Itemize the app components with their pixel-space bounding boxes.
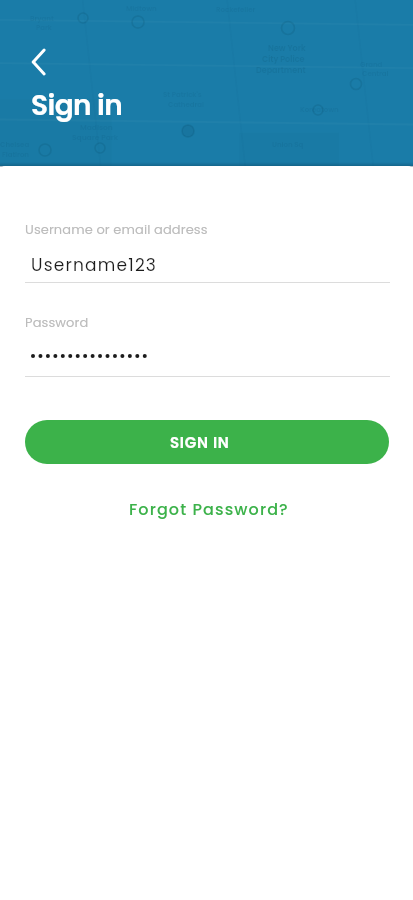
button[interactable]: Back bbox=[22, 44, 58, 80]
button[interactable]: Forgot Password? bbox=[123, 492, 295, 526]
button[interactable]: SIGN IN bbox=[25, 420, 389, 464]
staticText: Username123 bbox=[31, 253, 158, 277]
staticText: SIGN IN bbox=[170, 432, 230, 453]
staticText: Password bbox=[25, 313, 89, 331]
staticText: Username or email address bbox=[25, 220, 208, 238]
staticText: Sign in bbox=[31, 86, 123, 125]
